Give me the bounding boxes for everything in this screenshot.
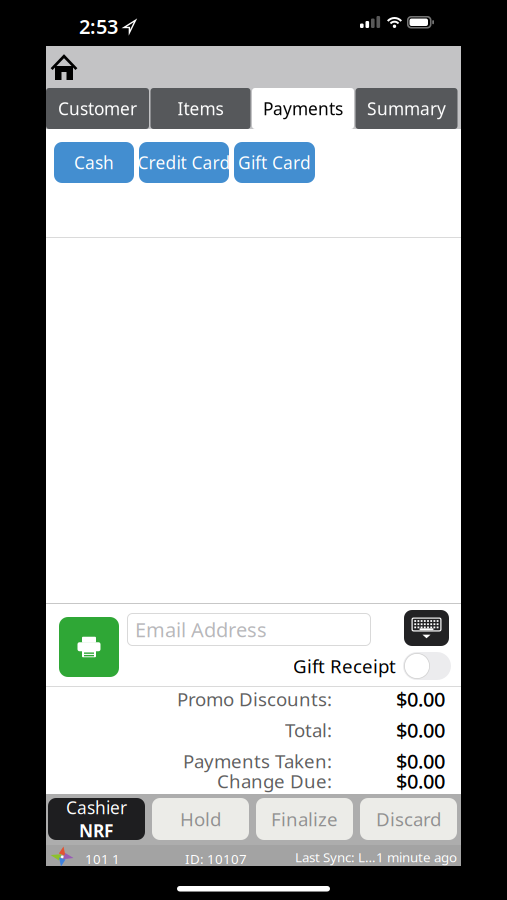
button[interactable]: Print receipt — [59, 617, 119, 677]
staticText: Credit Card — [137, 151, 230, 174]
staticText: Gift Card — [238, 151, 311, 174]
staticText: 2:53 — [79, 13, 118, 40]
button[interactable]: Gift Card — [234, 142, 315, 183]
staticText: NRF — [79, 819, 114, 842]
staticText: Summary — [367, 97, 446, 120]
staticText: Payments — [263, 97, 343, 120]
staticText: Finalize — [271, 807, 338, 831]
staticText: Customer — [58, 97, 137, 120]
staticText: $0.00 — [396, 768, 445, 794]
button[interactable]: Email Address — [127, 613, 371, 646]
button[interactable]: Payments — [252, 88, 354, 129]
button[interactable]: Dismiss keyboard — [404, 610, 449, 646]
button[interactable]: Cash — [54, 142, 134, 183]
button[interactable]: Gift Receipt — [403, 652, 451, 680]
staticText: Discard — [376, 807, 441, 831]
button[interactable]: Finalize — [256, 798, 353, 840]
button[interactable]: Customer — [46, 88, 149, 129]
button[interactable]: Discard — [360, 798, 457, 840]
button[interactable]: Credit Card — [139, 142, 229, 183]
button[interactable]: Cashier — [48, 798, 145, 840]
button[interactable]: Summary — [355, 88, 457, 129]
staticText: $0.00 — [396, 686, 445, 712]
staticText: $0.00 — [396, 717, 445, 743]
staticText: Total: — [285, 718, 332, 742]
staticText: Gift Receipt — [293, 654, 396, 678]
staticText: Promo Discounts: — [177, 687, 332, 711]
button[interactable]: Items — [150, 88, 250, 129]
staticText: Last Sync: L…1 minute ago — [295, 848, 457, 866]
staticText: $0.00 — [396, 748, 445, 774]
button[interactable]: Hold — [152, 798, 249, 840]
staticText: ID: 10107 — [185, 850, 247, 868]
staticText: Items — [177, 97, 223, 120]
staticText: Email Address — [135, 616, 267, 643]
staticText: Hold — [180, 807, 221, 831]
staticText: 101 1 — [85, 850, 120, 868]
button[interactable]: Home — [46, 46, 78, 80]
staticText: Payments Taken: — [183, 749, 332, 773]
staticText: Cashier — [66, 796, 127, 819]
staticText: Cash — [74, 151, 114, 174]
staticText: Change Due: — [217, 769, 332, 793]
